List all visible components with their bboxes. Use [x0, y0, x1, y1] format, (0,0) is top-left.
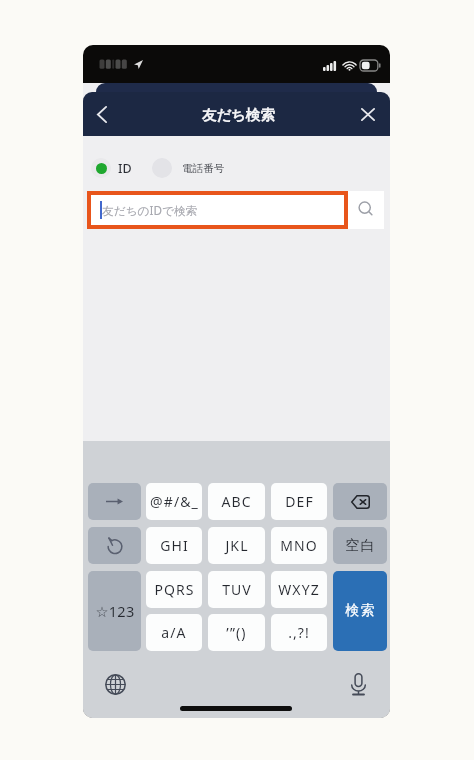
button[interactable]: 空白 [333, 527, 387, 564]
button[interactable]: WXYZ [271, 571, 327, 608]
button[interactable]: ID [91, 153, 132, 183]
button[interactable]: Close [351, 92, 385, 136]
staticText: ID [118, 160, 132, 177]
button[interactable]: JKL [208, 527, 265, 564]
button[interactable]: ABC [208, 483, 265, 520]
staticText: .,?! [288, 623, 310, 642]
button[interactable]: 検索 [333, 571, 387, 651]
button[interactable]: Back [85, 92, 119, 136]
staticText: ABC [221, 492, 252, 511]
button[interactable] [88, 483, 141, 520]
button[interactable]: @#/&_ [146, 483, 202, 520]
button[interactable]: PQRS [146, 571, 202, 608]
button[interactable] [88, 527, 141, 564]
staticText: @#/&_ [150, 492, 199, 511]
staticText: a/A [161, 623, 187, 642]
staticText: WXYZ [278, 580, 320, 599]
staticText: ☆123 [95, 601, 135, 621]
staticText: MNO [280, 536, 318, 555]
button[interactable]: Switch keyboard [95, 664, 135, 704]
staticText: 友だち検索 [202, 106, 275, 124]
staticText: 電話番号 [182, 162, 225, 175]
staticText: JKL [225, 536, 249, 555]
button[interactable]: Dictation [338, 664, 378, 704]
button[interactable]: GHI [146, 527, 202, 564]
staticText: 検索 [345, 602, 375, 620]
button[interactable]: a/A [146, 614, 202, 651]
button[interactable] [333, 483, 387, 520]
button[interactable]: MNO [271, 527, 327, 564]
staticText: GHI [160, 536, 189, 555]
button[interactable]: 友だちのIDで検索 [87, 191, 348, 229]
staticText: PQRS [154, 580, 195, 599]
button[interactable]: ’”() [208, 614, 265, 651]
button[interactable]: 電話番号 [152, 153, 225, 183]
button[interactable]: ☆123 [88, 571, 141, 651]
button[interactable]: TUV [208, 571, 265, 608]
staticText: 空白 [345, 537, 375, 555]
staticText: TUV [222, 580, 252, 599]
button[interactable]: Search [350, 191, 383, 229]
staticText: 友だちのIDで検索 [102, 202, 198, 218]
staticText: ’”() [226, 623, 247, 642]
button[interactable]: .,?! [271, 614, 327, 651]
staticText: DEF [285, 492, 314, 511]
button[interactable]: DEF [271, 483, 327, 520]
